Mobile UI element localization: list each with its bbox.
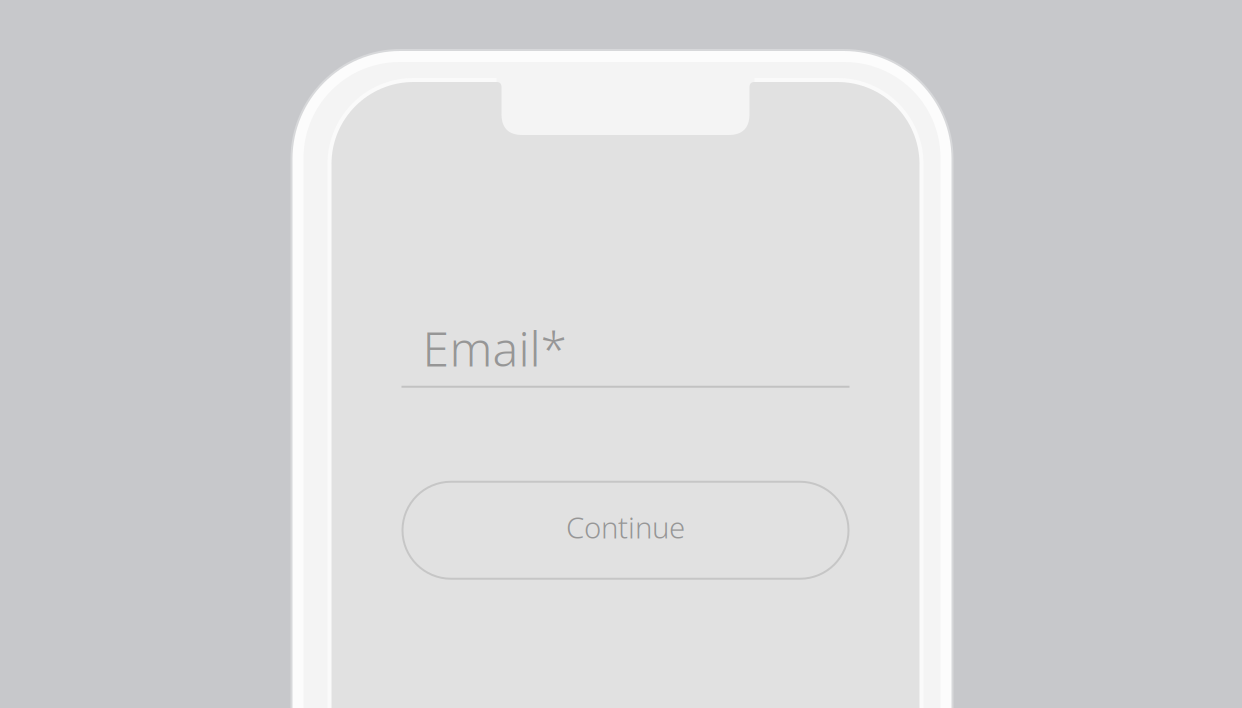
- button[interactable]: Continue: [402, 482, 848, 579]
- staticText: Email*: [422, 316, 566, 380]
- button[interactable]: Email*: [401, 316, 849, 388]
- staticText: Continue: [566, 508, 685, 547]
